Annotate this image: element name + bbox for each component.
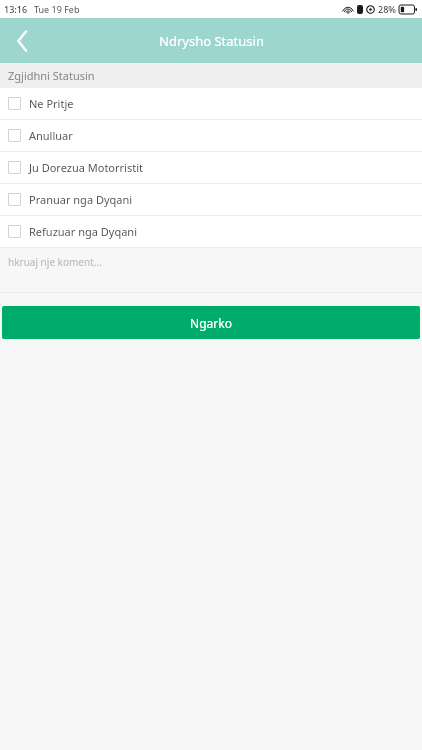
staticText: Refuzuar nga Dyqani — [29, 224, 137, 239]
staticText: Ndrysho Statusin — [159, 32, 264, 50]
button[interactable]: Refuzuar nga Dyqani — [0, 216, 422, 247]
staticText: Ne Pritje — [29, 96, 74, 111]
staticText: 13:16 — [4, 3, 28, 15]
button[interactable]: hkruaj nje koment... — [0, 248, 422, 292]
staticText: Zgjidhni Statusin — [8, 68, 95, 83]
button[interactable]: Pranuar nga Dyqani — [0, 184, 422, 215]
staticText: Ngarko — [190, 315, 232, 331]
staticText: Tue 19 Feb — [34, 3, 80, 15]
staticText: 28% — [378, 3, 396, 15]
staticText: Pranuar nga Dyqani — [29, 192, 133, 207]
staticText: Ju Dorezua Motorristit — [29, 160, 143, 175]
button[interactable]: Anulluar — [0, 120, 422, 151]
staticText: hkruaj nje koment... — [8, 255, 102, 269]
button[interactable]: Ne Pritje — [0, 88, 422, 119]
staticText: Anulluar — [29, 128, 73, 143]
button[interactable]: Ngarko — [2, 306, 420, 339]
button[interactable]: Ju Dorezua Motorristit — [0, 152, 422, 183]
button[interactable]: Back — [0, 19, 44, 63]
